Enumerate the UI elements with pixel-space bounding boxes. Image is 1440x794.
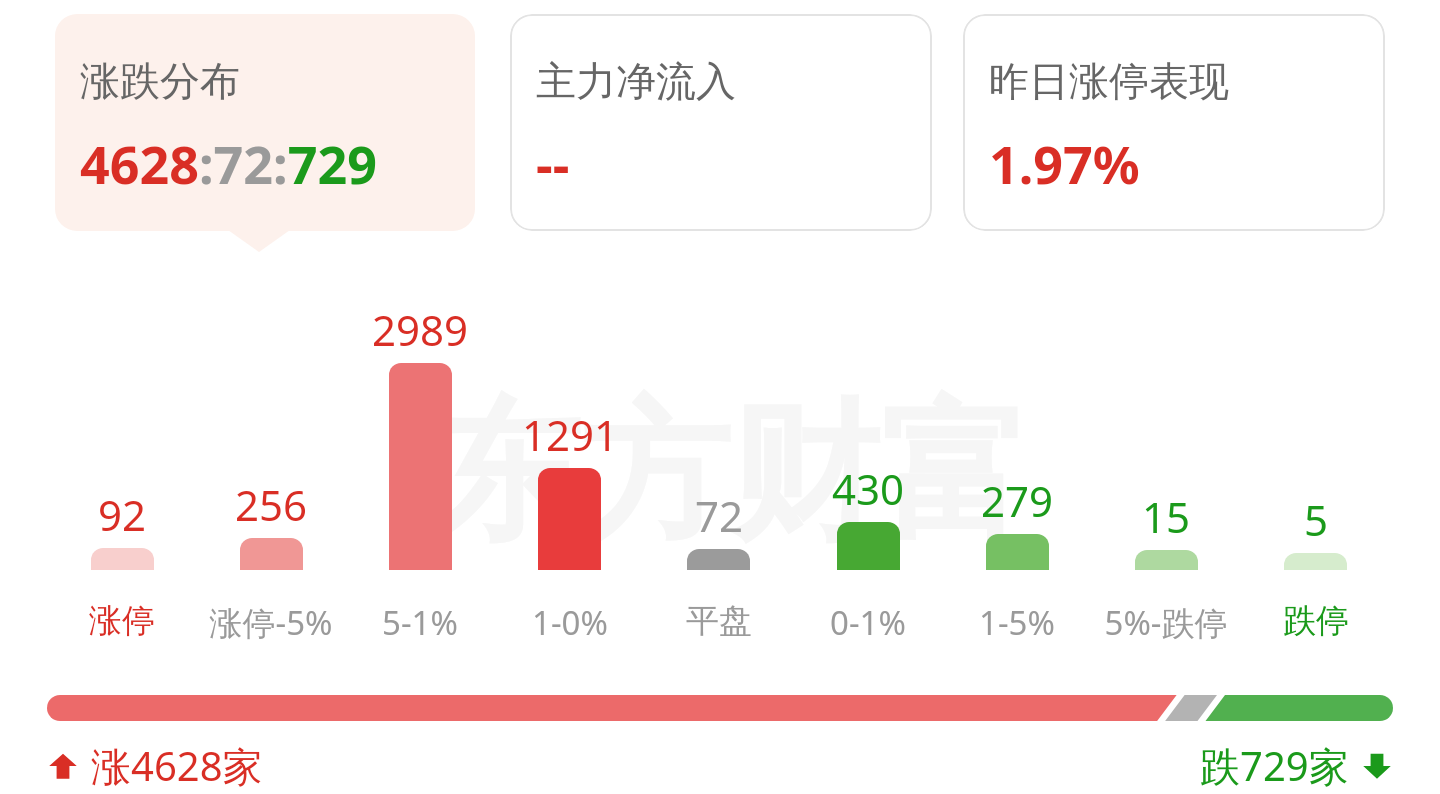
staticText: 主力净流入 [536,56,736,106]
staticText: 跌729家 [1200,738,1349,793]
staticText: 5 [1241,491,1391,548]
staticText: 279 [942,472,1092,529]
staticText: 涨跌分布 [80,56,240,106]
staticText: 5%-跌停 [1086,600,1246,645]
staticText: 15 [1091,488,1241,545]
staticText: 0-1% [788,600,948,645]
staticText: 1-0% [490,600,650,645]
staticText: 430 [793,460,943,517]
staticText: 涨停 [42,600,202,642]
staticText: 2989 [345,301,495,358]
other: Down [1361,750,1393,782]
staticText: 涨4628家 [91,738,263,793]
staticText: 平盘 [639,600,799,642]
staticText: 跌停 [1236,600,1396,642]
staticText: 昨日涨停表现 [989,56,1229,106]
staticText: -- [536,128,570,199]
staticText: 5-1% [340,600,500,645]
staticText: 涨停-5% [191,600,351,645]
staticText: 1-5% [937,600,1097,645]
button[interactable]: 昨日涨停表现 [963,14,1385,231]
staticText: 东方财富 [430,380,1030,569]
staticText: 1.97% [989,128,1140,199]
staticText: 1291 [495,406,645,463]
other: Up [47,750,79,782]
button[interactable]: 涨跌分布 [55,14,475,231]
staticText: 92 [47,486,197,543]
button[interactable]: 主力净流入 [510,14,932,231]
staticText: 72 [644,487,794,544]
staticText: 4628:72:729 [80,128,377,199]
staticText: 256 [196,476,346,533]
